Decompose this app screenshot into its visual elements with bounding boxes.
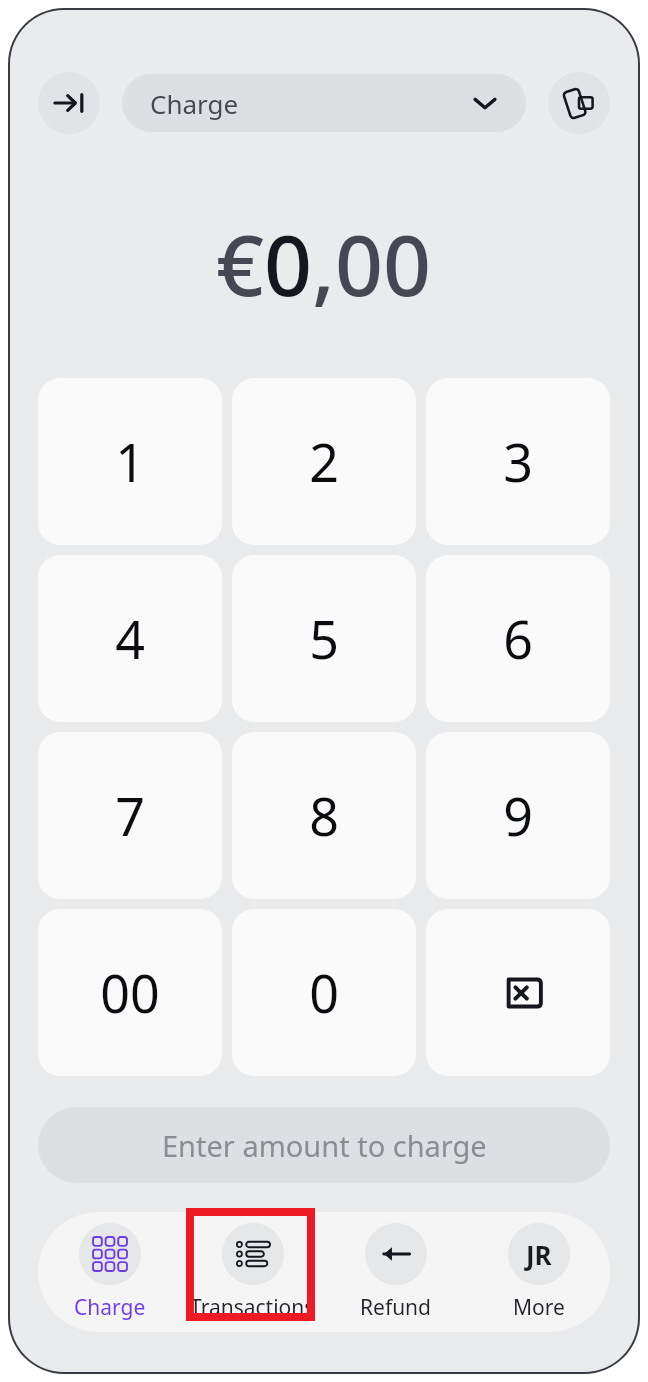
staticText: 3	[503, 426, 533, 497]
button[interactable]: Refund	[324, 1217, 467, 1328]
button[interactable]: 7	[38, 732, 222, 899]
button[interactable]: 6	[426, 555, 610, 722]
button[interactable]: Tap to pay	[548, 72, 610, 134]
button[interactable]: Exit	[38, 72, 100, 134]
button[interactable]: Charge	[122, 74, 526, 132]
staticText: 1	[115, 426, 145, 497]
staticText: Charge	[150, 86, 239, 121]
button[interactable]: 9	[426, 732, 610, 899]
button[interactable]: Backspace	[426, 909, 610, 1076]
button[interactable]: Transactions	[181, 1217, 324, 1328]
button[interactable]: 2	[232, 378, 416, 545]
button[interactable]: 0	[232, 909, 416, 1076]
staticText: Refund	[360, 1293, 432, 1322]
staticText: More	[513, 1293, 565, 1322]
staticText: 2	[309, 426, 339, 497]
staticText: 0	[309, 957, 339, 1028]
staticText: 5	[309, 603, 339, 674]
staticText: Enter amount to charge	[162, 1126, 487, 1165]
staticText: Transactions	[190, 1293, 315, 1322]
button[interactable]: Enter amount to charge	[38, 1107, 610, 1183]
staticText: Charge	[74, 1293, 146, 1322]
button[interactable]: 00	[38, 909, 222, 1076]
staticText: €0,00	[216, 206, 432, 320]
button[interactable]: 4	[38, 555, 222, 722]
staticText: JR	[526, 1237, 552, 1272]
button[interactable]: JR	[467, 1217, 610, 1328]
button[interactable]: 8	[232, 732, 416, 899]
staticText: 00	[100, 957, 160, 1028]
staticText: 7	[115, 780, 145, 851]
staticText: 8	[309, 780, 339, 851]
staticText: 4	[115, 603, 145, 674]
button[interactable]: Charge	[38, 1217, 181, 1328]
button[interactable]: 3	[426, 378, 610, 545]
button[interactable]: 5	[232, 555, 416, 722]
staticText: 9	[503, 780, 533, 851]
button[interactable]: 1	[38, 378, 222, 545]
staticText: 6	[503, 603, 533, 674]
